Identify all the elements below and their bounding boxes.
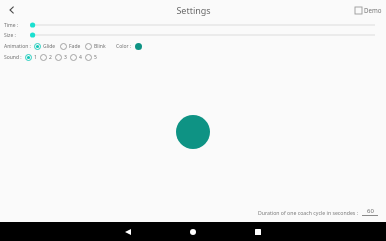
button[interactable]: 60 <box>362 207 378 216</box>
staticText: 60 <box>367 207 374 215</box>
button[interactable]: Recent apps <box>247 222 269 241</box>
staticText: 2 <box>49 54 52 61</box>
button[interactable]: 5 <box>85 54 97 61</box>
button[interactable]: Color picker <box>135 43 142 50</box>
staticText: Sound : <box>4 54 22 61</box>
staticText: Blink <box>94 43 106 50</box>
button[interactable]: Time : <box>30 20 375 30</box>
button[interactable]: Home <box>182 222 204 241</box>
button[interactable]: 4 <box>70 54 82 61</box>
button[interactable]: Back <box>4 2 20 18</box>
staticText: Settings <box>176 4 211 16</box>
staticText: Size : <box>4 32 16 39</box>
staticText: 5 <box>94 54 97 61</box>
button[interactable]: 1 <box>25 54 37 61</box>
button[interactable]: Demo <box>355 6 382 14</box>
staticText: Color : <box>116 43 132 50</box>
button[interactable]: Glide <box>34 43 56 50</box>
staticText: Time : <box>4 22 19 29</box>
staticText: Glide <box>43 43 56 50</box>
staticText: Animation : <box>4 43 31 50</box>
staticText: Duration of one coach cycle in secondes … <box>258 209 359 216</box>
button[interactable]: Blink <box>85 43 106 50</box>
button[interactable]: 2 <box>40 54 52 61</box>
staticText: 4 <box>79 54 82 61</box>
button[interactable]: Size : <box>30 30 375 40</box>
button[interactable]: 3 <box>55 54 67 61</box>
staticText: Demo <box>364 6 382 14</box>
button[interactable]: Back <box>117 222 139 241</box>
staticText: 1 <box>34 54 37 61</box>
staticText: 3 <box>64 54 67 61</box>
staticText: Fade <box>69 43 81 50</box>
button[interactable]: Fade <box>60 43 81 50</box>
